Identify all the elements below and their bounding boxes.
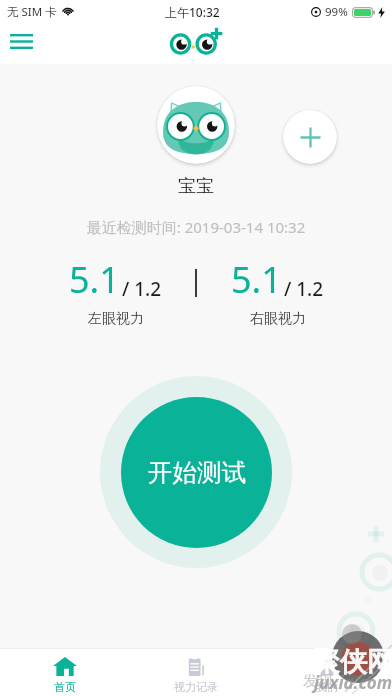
button[interactable]: Add child — [283, 110, 337, 164]
staticText: 上午10:32 — [165, 4, 220, 20]
staticText: / 1.2 — [122, 276, 162, 302]
staticText: 开始测试 — [148, 457, 246, 488]
staticText: 99% — [325, 4, 348, 20]
staticText: 最近检测时间: 2019-03-14 10:32 — [0, 217, 392, 237]
button[interactable]: 开始测试 — [121, 397, 272, 548]
staticText: 聚侠网 — [313, 645, 392, 679]
staticText: / 1.2 — [284, 276, 324, 302]
staticText: 视力记录 — [174, 680, 218, 694]
staticText: 左眼视力 — [88, 310, 144, 328]
staticText: 我的 — [316, 680, 338, 694]
staticText: 右眼视力 — [250, 310, 306, 328]
button[interactable]: 首页 — [0, 649, 130, 696]
button[interactable]: 视力记录 — [130, 649, 261, 696]
staticText: 发现 — [303, 672, 333, 691]
staticText: 无 SIM 卡 — [7, 4, 57, 20]
button[interactable]: 我的 — [261, 649, 392, 696]
button[interactable]: Menu — [3, 23, 39, 59]
staticText: juxia.com — [314, 671, 392, 694]
staticText: 首页 — [54, 680, 76, 694]
button[interactable]: 宝宝 profile — [157, 86, 235, 164]
staticText: 宝宝 — [0, 175, 392, 198]
staticText: 5.1 — [231, 255, 282, 304]
staticText: 5.1 — [69, 255, 120, 304]
